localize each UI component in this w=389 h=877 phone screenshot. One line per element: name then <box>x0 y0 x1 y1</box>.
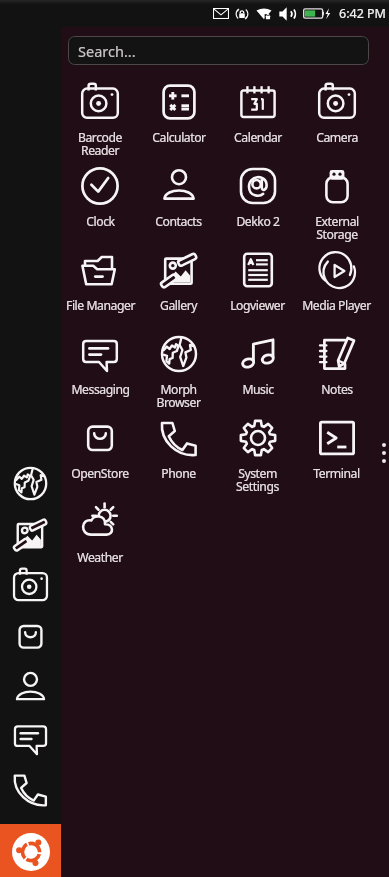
button[interactable]: File Manager <box>61 244 139 328</box>
button[interactable]: Dekko 2 <box>218 160 297 244</box>
button[interactable]: OpenStore <box>0 611 61 662</box>
staticText: Clock <box>86 213 115 230</box>
button[interactable]: Contacts <box>139 160 218 244</box>
button[interactable]: Phone <box>0 764 61 815</box>
button[interactable]: External Storage <box>297 160 376 244</box>
button[interactable]: Gallery <box>0 509 61 560</box>
staticText: Gallery <box>160 297 197 314</box>
staticText: 6:42 PM <box>339 5 386 22</box>
button[interactable]: Messaging <box>61 328 139 412</box>
staticText: Search... <box>78 41 136 61</box>
staticText: Notes <box>321 381 353 398</box>
staticText: Calendar <box>234 129 282 146</box>
staticText: OpenStore <box>71 465 129 482</box>
staticText: Logviewer <box>230 297 285 314</box>
staticText: File Manager <box>66 297 135 314</box>
button[interactable]: Terminal <box>297 412 376 496</box>
button[interactable]: Phone <box>139 412 218 496</box>
button[interactable]: Weather <box>61 496 139 580</box>
staticText: System Settings <box>236 465 279 495</box>
button[interactable]: Morph Browser <box>139 328 218 412</box>
staticText: Terminal <box>313 465 360 482</box>
button[interactable]: Notes <box>297 328 376 412</box>
staticText: Weather <box>77 549 123 566</box>
staticText: Dekko 2 <box>236 213 280 230</box>
button[interactable]: Barcode Reader <box>61 76 139 160</box>
button[interactable]: Contacts <box>0 662 61 713</box>
button[interactable]: Media Player <box>297 244 376 328</box>
staticText: Calculator <box>152 129 206 146</box>
button[interactable]: Ubuntu home <box>0 824 61 877</box>
button[interactable]: Logviewer <box>218 244 297 328</box>
button[interactable]: Gallery <box>139 244 218 328</box>
button[interactable]: Messaging <box>0 713 61 764</box>
staticText: Messaging <box>71 381 130 398</box>
button[interactable]: Music <box>218 328 297 412</box>
button[interactable]: Clock <box>61 160 139 244</box>
staticText: Contacts <box>155 213 202 230</box>
button[interactable]: Camera <box>0 560 61 611</box>
staticText: External Storage <box>315 213 359 243</box>
staticText: Barcode Reader <box>78 129 122 159</box>
button[interactable]: OpenStore <box>61 412 139 496</box>
staticText: Phone <box>161 465 196 482</box>
staticText: Media Player <box>302 297 371 314</box>
button[interactable]: System Settings <box>218 412 297 496</box>
staticText: Camera <box>316 129 358 146</box>
button[interactable]: Camera <box>297 76 376 160</box>
button[interactable]: Search... <box>68 36 369 65</box>
staticText: Music <box>242 381 274 398</box>
button[interactable]: Calendar <box>218 76 297 160</box>
button[interactable]: Browser <box>0 458 61 509</box>
staticText: Morph Browser <box>156 381 201 411</box>
button[interactable]: Calculator <box>139 76 218 160</box>
